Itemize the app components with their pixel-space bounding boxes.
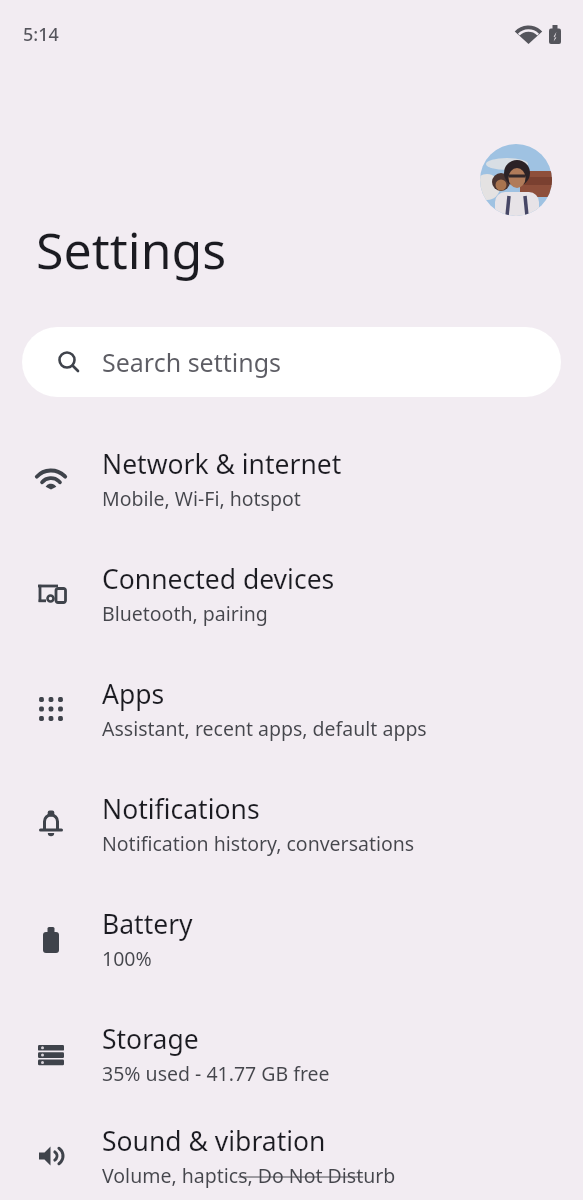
button[interactable]: Network & internet [0,421,583,536]
staticText: Mobile, Wi-Fi, hotspot [102,485,301,512]
button[interactable]: Search settings [22,327,561,397]
staticText: Battery [102,906,193,942]
staticText: Sound & vibration [102,1123,326,1159]
staticText: Notifications [102,791,260,827]
staticText: Network & internet [102,446,342,482]
staticText: Volume, haptics, Do Not Disturb [102,1162,396,1189]
button[interactable]: Battery [0,881,583,996]
button[interactable]: Connected devices [0,536,583,651]
staticText: Bluetooth, pairing [102,600,268,627]
staticText: Storage [102,1021,199,1057]
staticText: Settings [36,216,227,284]
staticText: Apps [102,676,165,712]
staticText: 35% used - 41.77 GB free [102,1060,330,1087]
staticText: Assistant, recent apps, default apps [102,715,427,742]
button[interactable] [480,144,552,216]
staticText: 5:14 [23,22,59,47]
staticText: Connected devices [102,561,335,597]
button[interactable]: Apps [0,651,583,766]
button[interactable]: Sound & vibration [0,1111,583,1200]
staticText: Search settings [102,345,282,379]
staticText: Notification history, conversations [102,830,415,857]
button[interactable]: Storage [0,996,583,1111]
staticText: 100% [102,945,152,972]
button[interactable]: Notifications [0,766,583,881]
